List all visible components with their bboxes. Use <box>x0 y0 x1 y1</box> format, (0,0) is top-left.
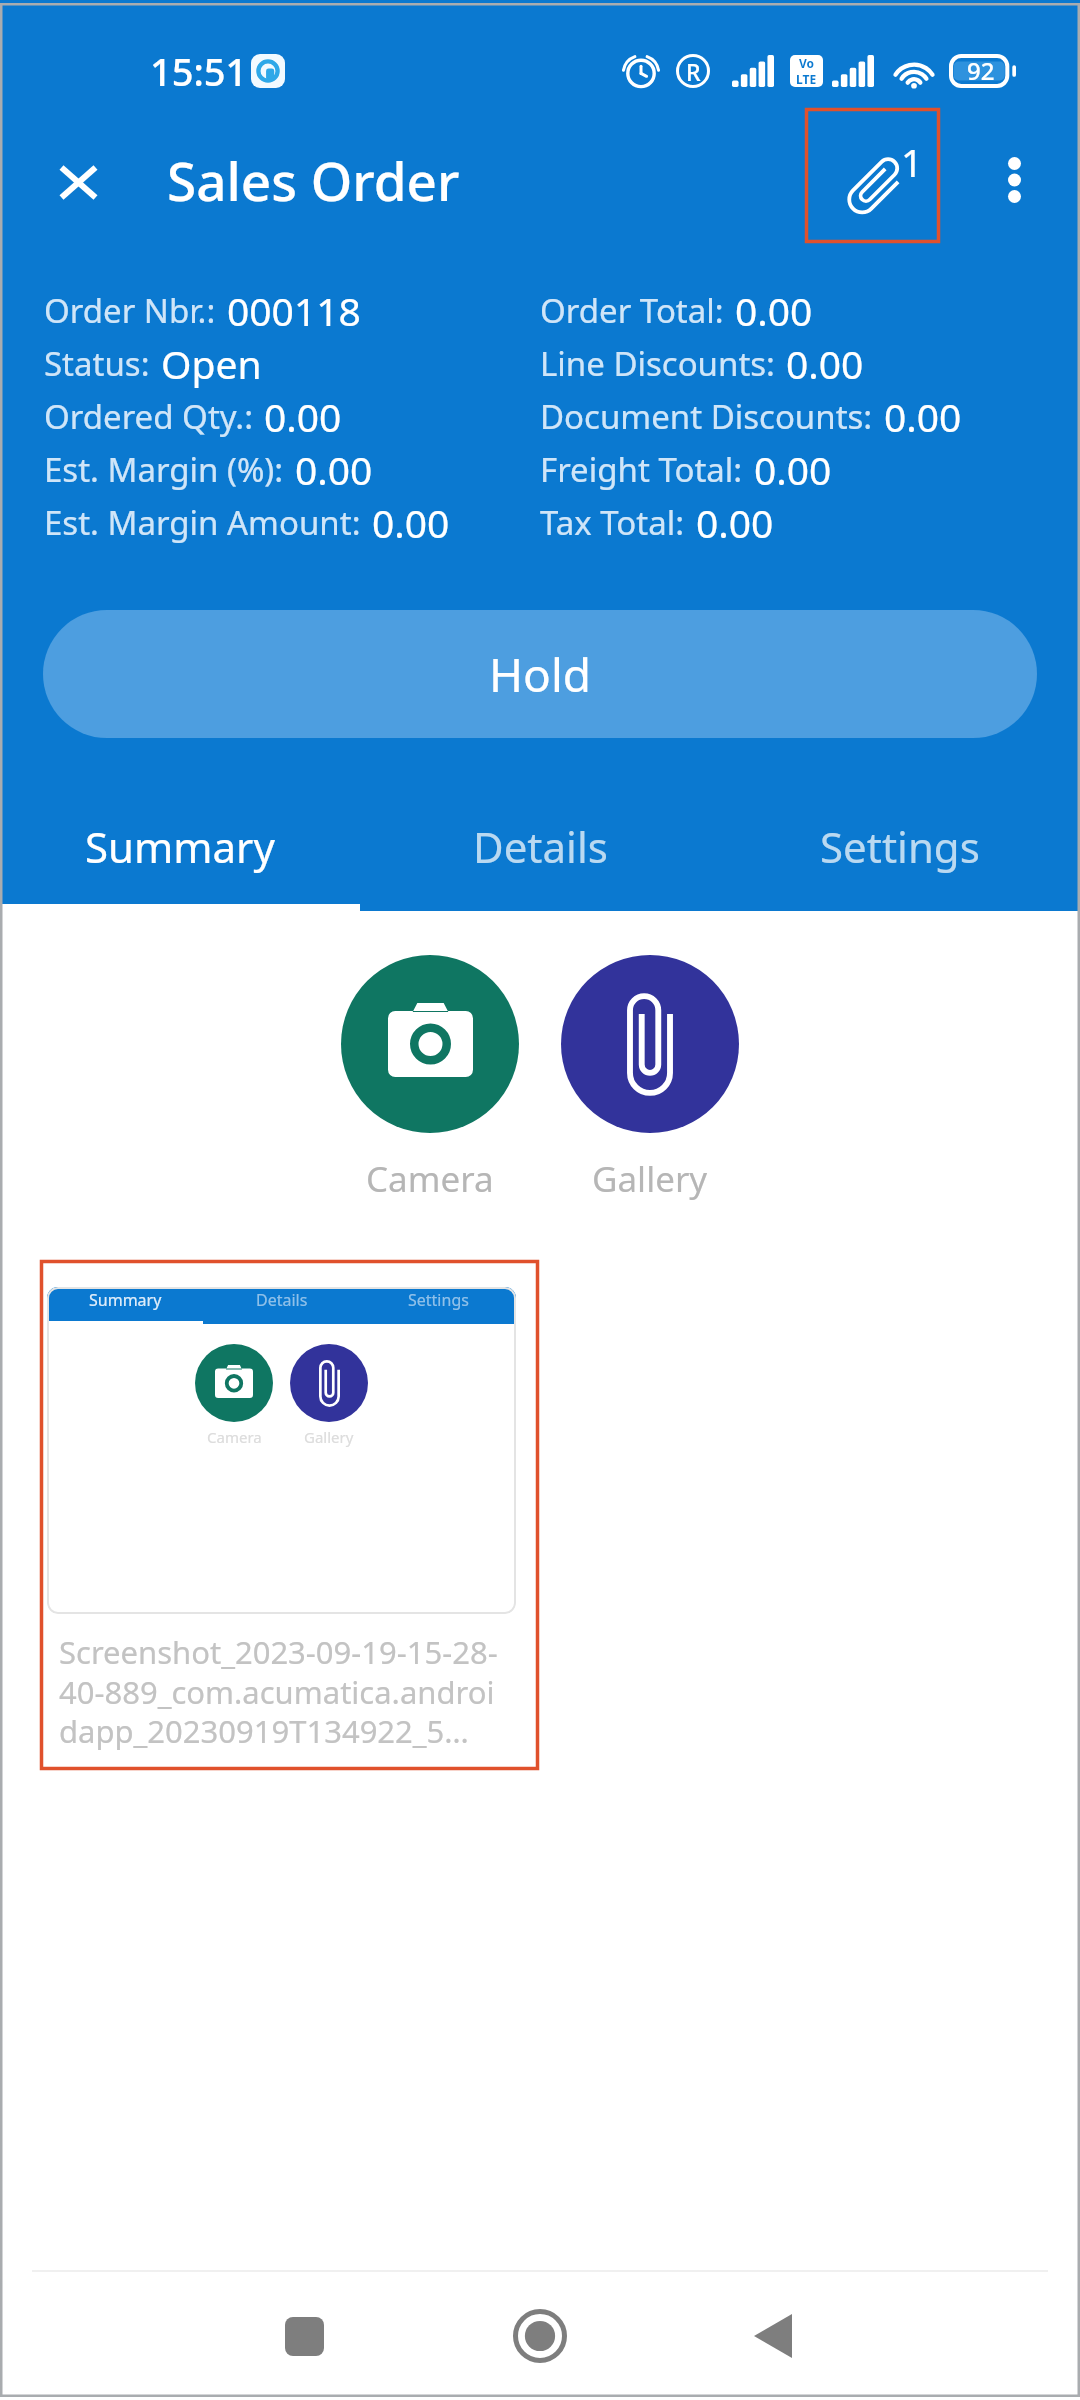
button[interactable]: Summary <box>0 794 360 899</box>
staticText: 0.00 <box>754 443 832 496</box>
staticText: Summary <box>85 818 275 875</box>
button[interactable]: Gallery <box>561 955 739 1203</box>
staticText: Order Nbr.: <box>44 288 216 333</box>
staticText: Screenshot_2023-09-19-15-28-40-889_com.a… <box>59 1631 503 1752</box>
button[interactable]: Recent apps <box>256 2288 352 2384</box>
button[interactable]: Home <box>492 2288 588 2384</box>
staticText: LTE <box>796 71 817 87</box>
staticText: Summary <box>89 1289 162 1311</box>
staticText: 1 <box>901 136 923 188</box>
button[interactable]: Details <box>360 794 720 899</box>
staticText: Freight Total: <box>540 447 743 492</box>
button[interactable]: Attachments <box>805 108 940 243</box>
staticText: Est. Margin Amount: <box>44 500 361 545</box>
staticText: 0.00 <box>264 390 342 443</box>
staticText: Gallery <box>304 1427 354 1447</box>
staticText: Document Discounts: <box>540 394 873 439</box>
staticText: Order Total: <box>540 288 724 333</box>
staticText: Open <box>161 337 262 390</box>
button[interactable]: Close <box>30 134 126 230</box>
staticText: 0.00 <box>735 284 813 337</box>
staticText: Ordered Qty.: <box>44 394 253 439</box>
staticText: Camera <box>366 1155 494 1203</box>
staticText: Est. Margin (%): <box>44 447 284 492</box>
staticText: 0.00 <box>884 390 962 443</box>
staticText: 0.00 <box>696 496 774 549</box>
button[interactable]: More options <box>966 132 1062 228</box>
button[interactable]: Settings <box>720 794 1080 899</box>
staticText: 92 <box>967 54 995 87</box>
staticText: Details <box>256 1289 308 1311</box>
button[interactable]: Camera <box>341 955 519 1203</box>
staticText: Settings <box>408 1289 469 1311</box>
staticText: 0.00 <box>295 443 373 496</box>
staticText: 15:51 <box>150 45 248 97</box>
button[interactable]: Back <box>727 2288 823 2384</box>
staticText: Line Discounts: <box>540 341 775 386</box>
staticText: 0.00 <box>786 337 864 390</box>
staticText: Gallery <box>592 1155 708 1203</box>
button[interactable]: Hold <box>43 610 1037 738</box>
staticText: Tax Total: <box>540 500 685 545</box>
staticText: Settings <box>820 818 980 875</box>
staticText: Details <box>473 818 608 875</box>
staticText: Hold <box>489 643 592 706</box>
staticText: R <box>686 56 701 87</box>
staticText: 000118 <box>227 284 361 337</box>
staticText: Status: <box>44 341 150 386</box>
staticText: Sales Order <box>167 144 460 216</box>
button[interactable]: Summary <box>47 1287 516 1614</box>
staticText: Vo <box>799 55 815 71</box>
staticText: Camera <box>207 1427 262 1447</box>
staticText: 0.00 <box>372 496 450 549</box>
